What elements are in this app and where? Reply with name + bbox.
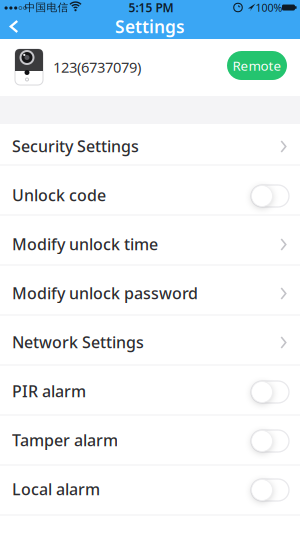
staticText: Tamper alarm — [12, 429, 118, 451]
staticText: 100% — [255, 0, 282, 15]
staticText: Local alarm — [12, 478, 100, 500]
staticText: Modify unlock password — [12, 282, 198, 304]
staticText: Remote — [232, 57, 281, 74]
staticText: Security Settings — [12, 135, 139, 157]
staticText: PIR alarm — [12, 380, 86, 402]
staticText: Modify unlock time — [12, 233, 158, 255]
staticText: Settings — [115, 15, 185, 38]
staticText: 5:15 PM — [128, 0, 173, 15]
staticText: 123(6737079) — [53, 57, 141, 77]
staticText: Unlock code — [12, 184, 106, 206]
staticText: 中国电信 — [24, 1, 68, 14]
staticText: Network Settings — [12, 331, 144, 353]
